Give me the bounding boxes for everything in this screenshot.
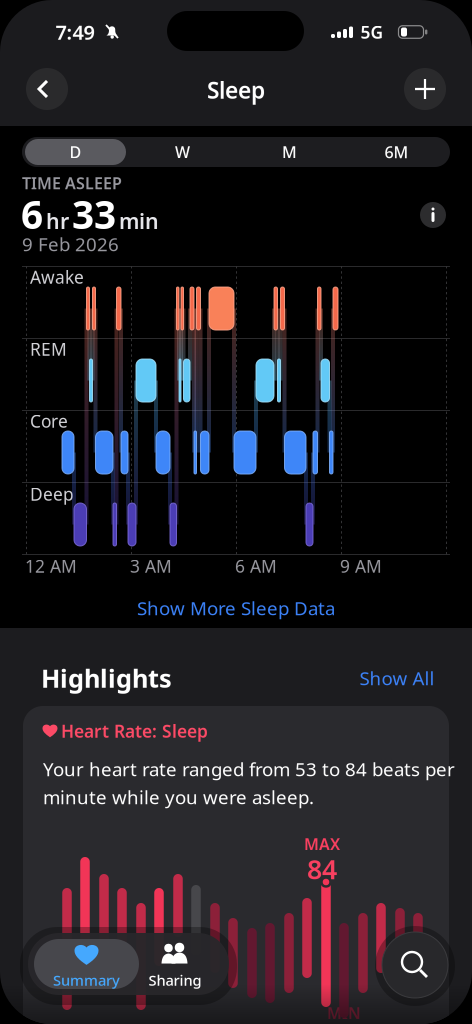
staticText: Show More Sleep Data bbox=[137, 596, 335, 620]
staticText: Show All bbox=[359, 666, 434, 690]
staticText: Core bbox=[30, 409, 68, 432]
staticText: 3 AM bbox=[130, 554, 172, 577]
staticText: 12 AM bbox=[25, 554, 77, 577]
staticText: Sleep bbox=[207, 75, 265, 105]
staticText: MAX bbox=[304, 833, 340, 855]
button[interactable]: M bbox=[236, 137, 343, 167]
button[interactable]: Show More Sleep Data bbox=[137, 596, 335, 620]
button[interactable]: Summary bbox=[34, 939, 139, 989]
staticText: M bbox=[282, 141, 297, 163]
staticText: Awake bbox=[30, 265, 84, 288]
staticText: minute while you were asleep. bbox=[43, 785, 314, 809]
button[interactable] bbox=[23, 706, 449, 1024]
staticText: 5G bbox=[360, 20, 383, 43]
staticText: min bbox=[119, 207, 159, 235]
staticText: D bbox=[69, 141, 81, 163]
staticText: 9 Feb 2026 bbox=[22, 232, 119, 256]
staticText: Heart Rate: Sleep bbox=[61, 719, 208, 742]
staticText: Deep bbox=[30, 482, 74, 505]
button[interactable] bbox=[420, 202, 446, 228]
staticText: W bbox=[175, 141, 190, 163]
staticText: 9 AM bbox=[340, 554, 382, 577]
staticText: Summary bbox=[53, 970, 120, 990]
staticText: 6 bbox=[21, 188, 43, 240]
staticText: TIME ASLEEP bbox=[22, 172, 122, 194]
staticText: Highlights bbox=[41, 661, 172, 695]
staticText: REM bbox=[30, 337, 67, 360]
staticText: hr bbox=[46, 207, 69, 235]
staticText: MIN bbox=[327, 1002, 361, 1024]
staticText: 6M bbox=[384, 141, 408, 163]
button[interactable] bbox=[382, 932, 448, 998]
button[interactable] bbox=[26, 68, 68, 110]
button[interactable]: D bbox=[22, 137, 129, 167]
button[interactable]: Show All bbox=[359, 666, 434, 690]
button[interactable]: 6M bbox=[343, 137, 450, 167]
staticText: 7:49 bbox=[55, 19, 94, 45]
staticText: 84 bbox=[307, 851, 337, 887]
button[interactable]: W bbox=[129, 137, 236, 167]
staticText: Your heart rate ranged from 53 to 84 bea… bbox=[43, 757, 455, 781]
button[interactable] bbox=[404, 68, 446, 110]
staticText: Sharing bbox=[148, 970, 201, 990]
staticText: 6 AM bbox=[235, 554, 277, 577]
staticText: 33 bbox=[72, 188, 116, 240]
button[interactable]: Sharing bbox=[130, 939, 220, 989]
